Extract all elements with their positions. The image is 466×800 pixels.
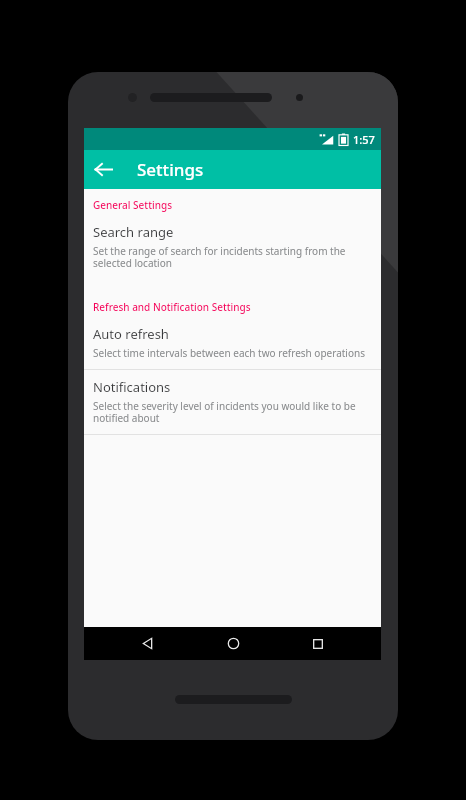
- button[interactable]: Recent apps: [296, 627, 340, 660]
- staticText: Select the severity level of incidents y…: [93, 399, 356, 425]
- staticText: Select time intervals between each two r…: [93, 346, 365, 360]
- button[interactable]: Back: [84, 150, 123, 189]
- staticText: Auto refresh: [93, 325, 169, 343]
- button[interactable]: Back: [125, 627, 169, 660]
- staticText: Settings: [137, 158, 204, 181]
- button[interactable]: Home: [211, 627, 255, 660]
- staticText: Set the range of search for incidents st…: [93, 244, 346, 270]
- button[interactable]: Search range: [84, 215, 381, 279]
- button[interactable]: Notifications: [84, 370, 381, 434]
- staticText: General Settings: [93, 198, 172, 212]
- staticText: 1:57: [353, 132, 375, 147]
- staticText: Search range: [93, 223, 174, 241]
- button[interactable]: Auto refresh: [84, 317, 381, 369]
- staticText: Refresh and Notification Settings: [93, 300, 251, 314]
- staticText: Notifications: [93, 378, 171, 396]
